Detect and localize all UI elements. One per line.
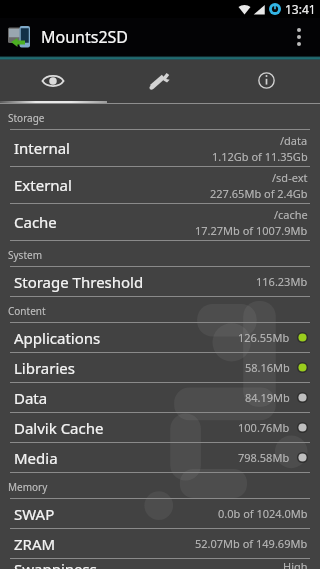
staticText: 84.19Mb bbox=[245, 390, 290, 405]
staticText: Internal bbox=[14, 138, 70, 158]
staticText: ZRAM bbox=[14, 534, 56, 554]
staticText: 116.23Mb bbox=[256, 274, 308, 289]
button[interactable]: SWAP bbox=[0, 499, 320, 529]
button[interactable]: Storage Threshold bbox=[0, 267, 320, 297]
button[interactable]: Media bbox=[0, 443, 320, 473]
staticText: 13:41 bbox=[285, 1, 316, 17]
button[interactable]: Info bbox=[213, 60, 320, 101]
button[interactable]: Data bbox=[0, 383, 320, 413]
staticText: 798.58Mb bbox=[238, 450, 290, 465]
staticText: Mounts2SD bbox=[41, 26, 129, 48]
staticText: Swappiness bbox=[14, 559, 97, 569]
staticText: Content bbox=[8, 304, 46, 318]
staticText: 126.55Mb bbox=[238, 330, 290, 345]
button[interactable]: Dalvik Cache bbox=[0, 413, 320, 443]
staticText: 1.12Gb of 11.35Gb bbox=[212, 149, 308, 164]
staticText: /data bbox=[280, 133, 308, 148]
staticText: SWAP bbox=[14, 504, 55, 524]
button[interactable]: Applications bbox=[0, 323, 320, 353]
staticText: 17.27Mb of 1007.9Mb bbox=[195, 223, 308, 238]
staticText: 58.16Mb bbox=[245, 360, 290, 375]
button[interactable]: Libraries bbox=[0, 353, 320, 383]
staticText: External bbox=[14, 175, 72, 195]
button[interactable]: ZRAM bbox=[0, 529, 320, 559]
staticText: Data bbox=[14, 388, 48, 408]
staticText: 52.07Mb of 149.69Mb bbox=[195, 536, 308, 551]
staticText: Storage Threshold bbox=[14, 272, 144, 292]
button[interactable]: Status bbox=[0, 60, 106, 101]
staticText: Applications bbox=[14, 328, 101, 348]
button[interactable]: Internal bbox=[0, 130, 320, 167]
staticText: 0.0b of 1024.0Mb bbox=[218, 506, 308, 521]
button[interactable]: More options bbox=[282, 18, 316, 56]
button[interactable]: Settings bbox=[106, 60, 213, 101]
button[interactable]: External bbox=[0, 167, 320, 204]
staticText: /sd-ext bbox=[272, 170, 308, 185]
staticText: Cache bbox=[14, 212, 57, 232]
button[interactable]: Swappiness bbox=[0, 559, 320, 569]
staticText: /cache bbox=[274, 207, 308, 222]
staticText: Dalvik Cache bbox=[14, 418, 104, 438]
button[interactable]: Cache bbox=[0, 204, 320, 241]
staticText: 100.76Mb bbox=[238, 420, 290, 435]
staticText: Media bbox=[14, 448, 58, 468]
staticText: Libraries bbox=[14, 358, 75, 378]
staticText: System bbox=[8, 248, 42, 262]
staticText: Storage bbox=[8, 111, 45, 125]
staticText: Memory bbox=[8, 480, 48, 494]
staticText: 227.65Mb of 2.4Gb bbox=[210, 186, 308, 201]
staticText: High bbox=[283, 559, 308, 569]
